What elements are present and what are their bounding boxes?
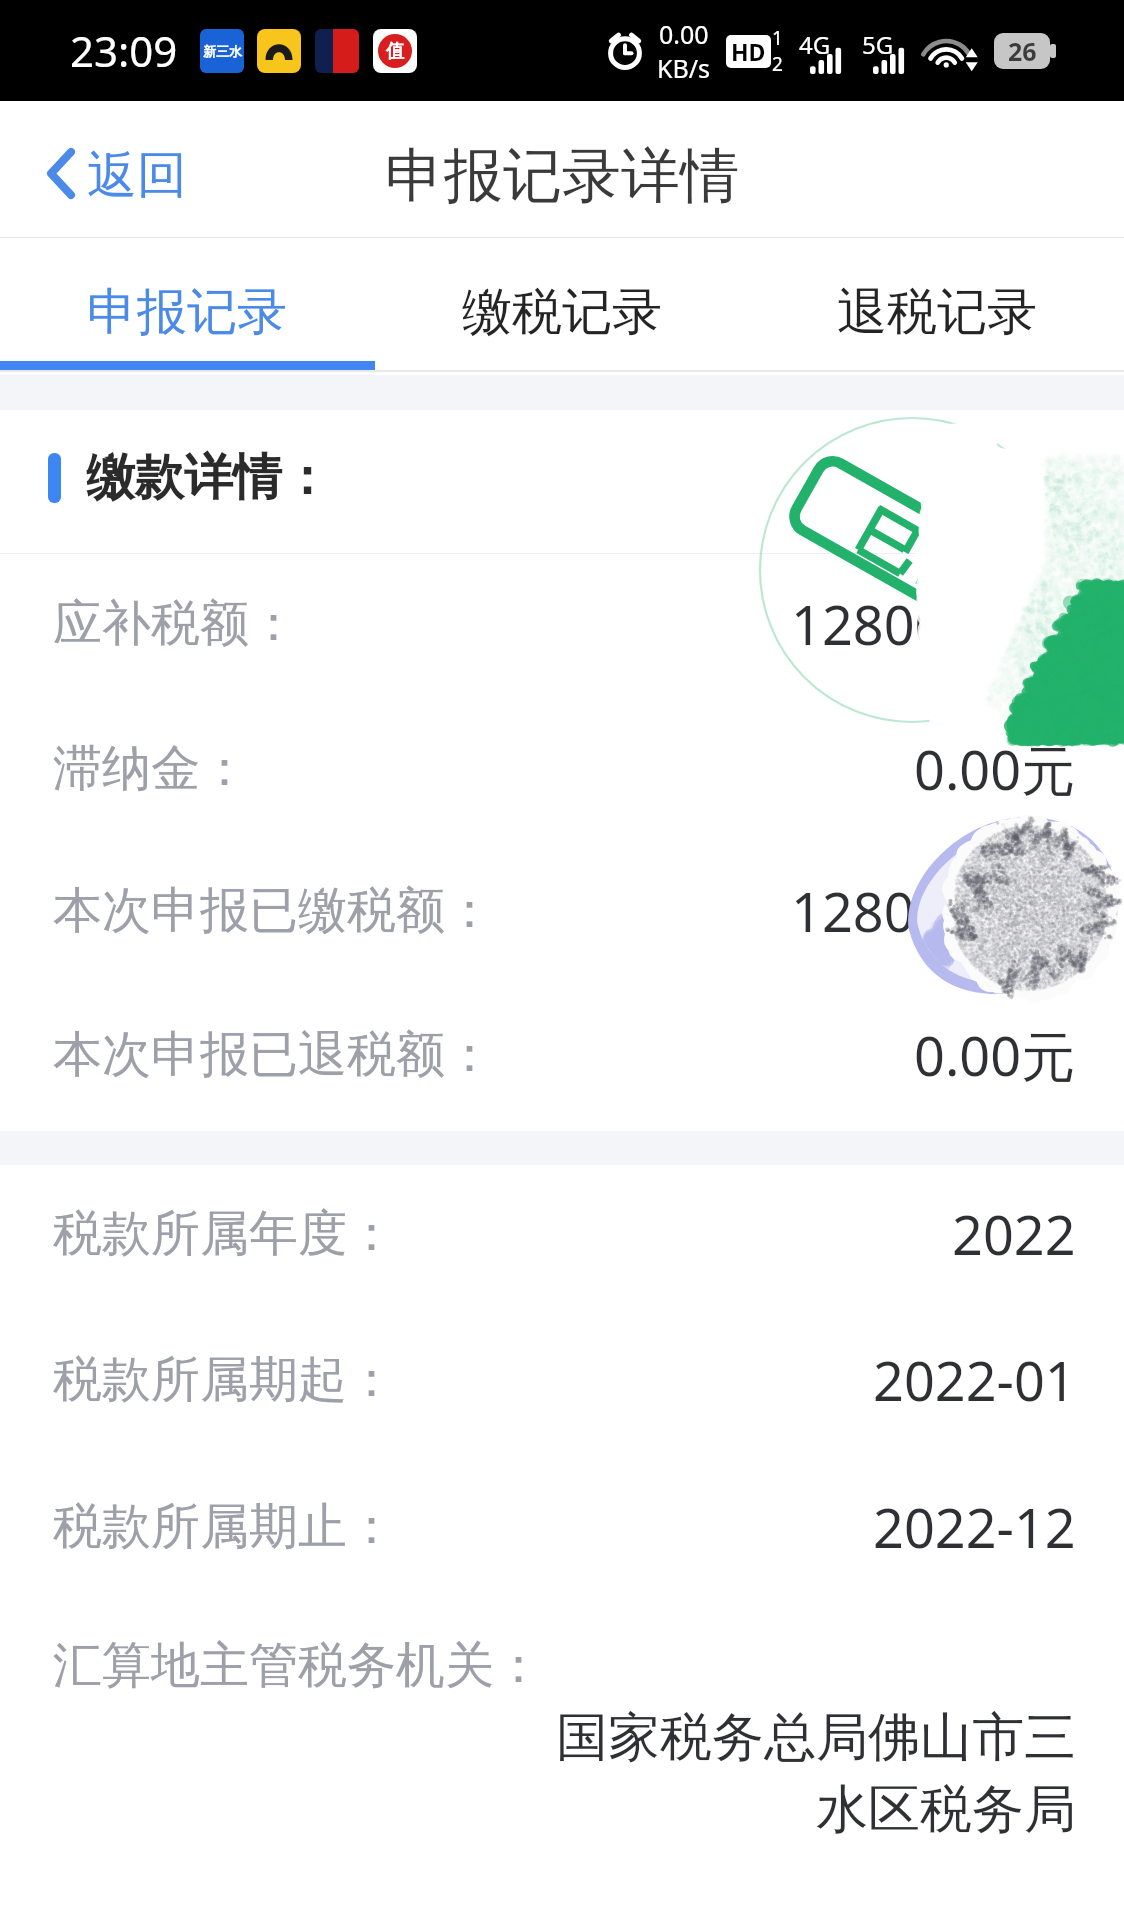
staticText: 税款所属期起： xyxy=(53,1349,396,1411)
staticText: 缴款详情： xyxy=(86,447,331,509)
staticText: 本次申报已退税额： xyxy=(53,1024,494,1086)
staticText: 26 xyxy=(1008,34,1037,68)
staticText: KB/s xyxy=(657,51,711,85)
staticText: 申报记录 xyxy=(87,281,287,344)
staticText: 值 xyxy=(386,40,404,63)
staticText: HD xyxy=(731,36,766,67)
staticText: 12800.00元 xyxy=(791,587,1076,661)
staticText: 税款所属期止： xyxy=(53,1496,396,1558)
staticText: 0.00元 xyxy=(914,732,1076,806)
staticText: 0.00元 xyxy=(914,1018,1076,1092)
staticText: 0.00 xyxy=(659,17,709,51)
staticText: 12800.00元 xyxy=(791,874,1076,948)
staticText: 汇算地主管税务机关： xyxy=(53,1635,543,1697)
staticText: 2022-12 xyxy=(873,1490,1076,1564)
button[interactable]: 退税记录 xyxy=(749,238,1124,361)
staticText: 新三水 xyxy=(203,43,242,59)
button[interactable]: 返回 xyxy=(30,119,207,221)
staticText: 5G xyxy=(862,28,894,61)
staticText: 4G xyxy=(799,28,831,61)
staticText: 1 xyxy=(772,25,783,51)
staticText: 滞纳金： xyxy=(53,738,249,800)
staticText: 申报记录详情 xyxy=(385,139,739,213)
staticText: 退税记录 xyxy=(837,281,1037,344)
staticText: 返回 xyxy=(87,144,187,207)
staticText: 税款所属年度： xyxy=(53,1203,396,1265)
staticText: 应补税额： xyxy=(53,593,298,655)
staticText: 本次申报已缴税额： xyxy=(53,880,494,942)
staticText: 缴税记录 xyxy=(462,281,662,344)
staticText: 2 xyxy=(772,51,783,77)
button[interactable]: 缴税记录 xyxy=(374,238,749,361)
staticText: 2022-01 xyxy=(873,1343,1076,1417)
button[interactable]: 申报记录 xyxy=(0,238,374,361)
staticText: 国家税务总局佛山市三水区税务局 xyxy=(552,1705,1076,1842)
staticText: 2022 xyxy=(952,1197,1076,1271)
staticText: 23:09 xyxy=(70,22,178,79)
